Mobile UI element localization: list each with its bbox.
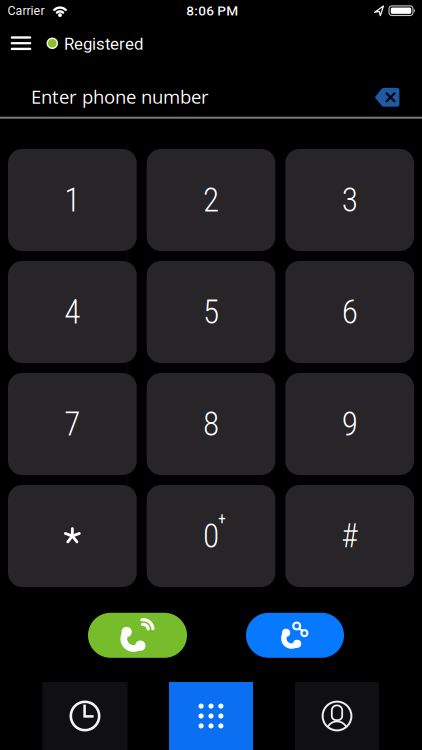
button[interactable]: History [42, 682, 127, 750]
button[interactable]: 4 [8, 261, 137, 363]
staticText: 4 [64, 292, 80, 332]
button[interactable]: 7 [8, 373, 137, 475]
button[interactable]: # [285, 485, 414, 587]
staticText: 5 [203, 292, 219, 332]
button[interactable]: Video call [246, 613, 344, 658]
button[interactable]: Audio call [88, 613, 187, 658]
staticText: 3 [342, 180, 358, 220]
button[interactable]: 3 [285, 149, 414, 251]
staticText: Carrier [7, 3, 44, 18]
staticText: Enter phone number [31, 84, 209, 109]
staticText: 7 [64, 404, 80, 444]
button[interactable]: Contacts [295, 682, 379, 750]
staticText: + [218, 509, 226, 528]
button[interactable]: 0 [147, 485, 275, 587]
button[interactable]: 1 [8, 149, 137, 251]
staticText: 1 [64, 180, 80, 220]
button[interactable]: 8 [147, 373, 275, 475]
staticText: 0 [203, 516, 219, 556]
staticText: 9 [342, 404, 358, 444]
staticText: 8:06 PM [186, 3, 238, 19]
button[interactable]: Delete [370, 82, 404, 112]
button[interactable]: Menu [5, 30, 37, 56]
staticText: 8 [203, 404, 219, 444]
button[interactable]: Star [8, 485, 137, 587]
staticText: 2 [203, 180, 219, 220]
button[interactable]: 2 [147, 149, 275, 251]
staticText: 6 [342, 292, 358, 332]
button[interactable]: 5 [147, 261, 275, 363]
button[interactable]: 6 [285, 261, 414, 363]
button[interactable]: Keypad [169, 682, 253, 750]
button[interactable]: 9 [285, 373, 414, 475]
staticText: # [341, 517, 358, 555]
staticText: Registered [64, 34, 143, 54]
